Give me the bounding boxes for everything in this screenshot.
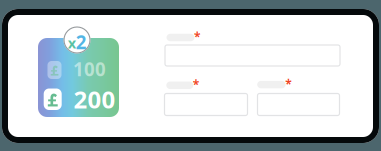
staticText: x <box>68 33 76 53</box>
staticText: * <box>285 76 292 92</box>
staticText: 200 <box>74 83 116 115</box>
button[interactable]: Text field <box>165 45 340 66</box>
staticText: * <box>194 29 201 45</box>
staticText: 2 <box>76 30 87 54</box>
button[interactable]: Text field <box>257 93 339 115</box>
button[interactable]: Text field <box>164 93 247 115</box>
staticText: 100 <box>73 57 106 81</box>
staticText: * <box>193 77 200 93</box>
